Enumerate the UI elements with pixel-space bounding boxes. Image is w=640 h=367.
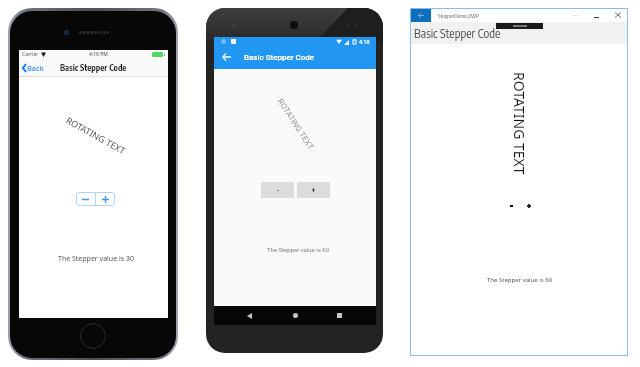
button[interactable]: Home [286,306,305,325]
staticText: 4:18 [359,39,370,45]
button[interactable]: Increment [297,182,330,198]
button[interactable]: Maximize [586,8,607,22]
staticText: StepperDemo.UWP [438,12,480,19]
staticText: The Stepper value is 60 [267,246,330,253]
button[interactable]: Recents [330,306,349,325]
button[interactable]: Minimize [565,8,586,22]
button[interactable]: Decrement [505,200,517,212]
button[interactable]: Back [22,59,44,76]
button[interactable]: Increment [523,200,535,212]
staticText: ROTATING TEXT [510,72,529,175]
button[interactable]: Close [607,8,628,22]
staticText: Basic Stepper Code [60,62,127,73]
staticText: The Stepper value is 60 [487,276,553,284]
staticText: The Stepper value is 30 [58,254,134,264]
staticText: Carrier [22,51,39,58]
staticText: ROTATING TEXT [276,97,315,152]
staticText: Back [27,63,44,73]
button[interactable]: Back [410,8,431,22]
button[interactable]: Increment [96,192,115,206]
staticText: Basic Stepper Code [244,53,315,62]
staticText: 4:10 PM [89,51,108,58]
button[interactable]: Decrement [261,182,294,198]
button[interactable]: Decrement [76,192,95,206]
button[interactable]: Back [214,45,238,69]
staticText: ROTATING TEXT [64,114,128,156]
staticText: Basic Stepper Code [414,26,501,41]
button[interactable]: Back [240,306,259,325]
